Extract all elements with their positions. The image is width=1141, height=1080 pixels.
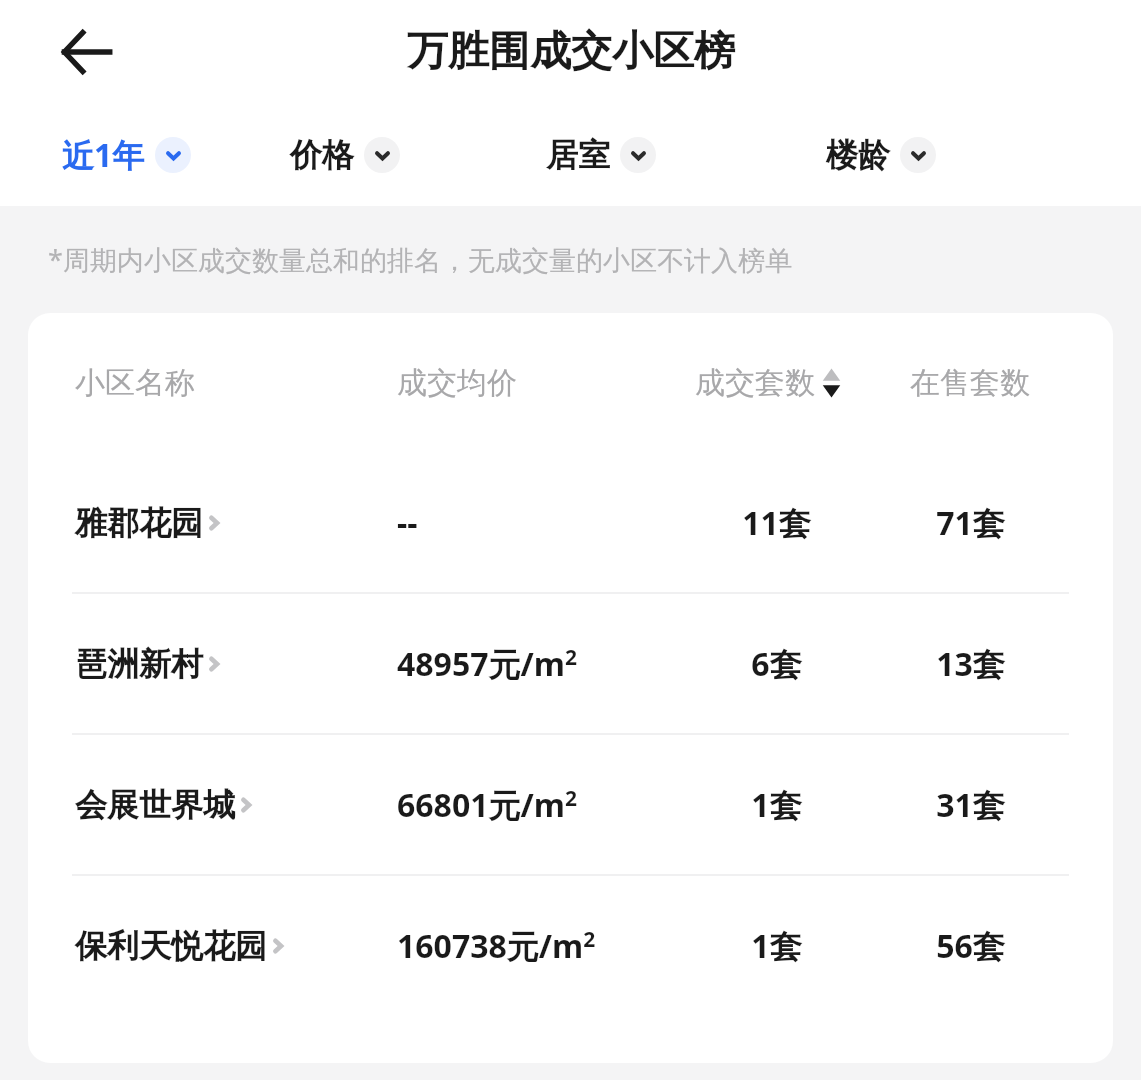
button[interactable]: 价格 [290,135,546,175]
staticText: 成交套数 [695,364,815,402]
staticText: 会展世界城 [75,785,235,825]
staticText: 雅郡花园 [75,503,203,543]
staticText: 保利天悦花园 [75,926,267,966]
staticText: 56套 [936,924,1005,968]
staticText: 在售套数 [910,364,1030,402]
staticText: 31套 [936,783,1005,827]
staticText: 楼龄 [826,135,890,175]
button[interactable]: 琶洲新村 [28,594,1113,733]
staticText: 48957元/m2 [397,642,578,686]
button[interactable]: 会展世界城 [28,735,1113,874]
staticText: -- [397,501,418,545]
button[interactable]: 楼龄 [826,135,1101,175]
button[interactable]: 居室 [546,135,826,175]
staticText: 万胜围成交小区榜 [407,26,735,78]
button[interactable]: Back [45,11,127,93]
staticText: 成交均价 [397,364,517,402]
button[interactable]: 近1年 [62,133,290,177]
staticText: 1套 [751,783,802,827]
button[interactable]: 保利天悦花园 [28,876,1113,1015]
button[interactable]: 成交套数 [695,364,857,402]
staticText: 小区名称 [75,364,195,402]
staticText: 价格 [290,135,354,175]
staticText: 琶洲新村 [75,644,203,684]
staticText: 160738元/m2 [397,924,596,968]
staticText: 13套 [936,642,1005,686]
staticText: *周期内小区成交数量总和的排名，无成交量的小区不计入榜单 [48,241,792,278]
staticText: 近1年 [62,133,145,177]
staticText: 71套 [936,501,1005,545]
staticText: 11套 [742,501,811,545]
staticText: 66801元/m2 [397,783,578,827]
staticText: 居室 [546,135,610,175]
staticText: 1套 [751,924,802,968]
button[interactable]: 雅郡花园 [28,453,1113,592]
staticText: 6套 [751,642,802,686]
